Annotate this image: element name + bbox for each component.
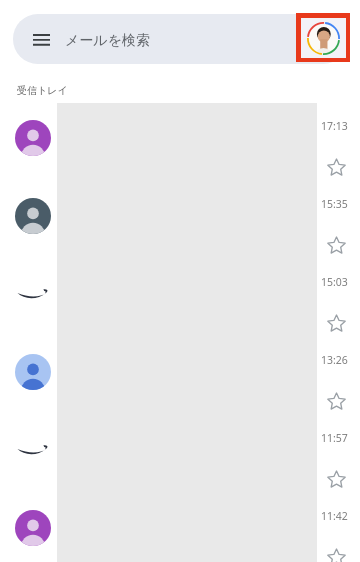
staticText: 13:26 [321,353,348,367]
staticText: 15:03 [321,275,348,289]
button[interactable]: 11:57 [0,415,360,493]
staticText: 17:13 [321,119,348,133]
button[interactable]: 11:42 [0,493,360,562]
button[interactable]: 15:03 [0,259,360,337]
staticText: 11:42 [321,509,348,523]
button[interactable]: Star conversation [327,548,346,562]
button[interactable]: Star conversation [327,392,346,410]
staticText: メールを検索 [65,32,150,50]
button[interactable]: Star conversation [327,314,346,332]
staticText: 受信トレイ [17,84,68,97]
staticText: 11:57 [321,431,348,445]
staticText: 15:35 [321,197,348,211]
button[interactable]: Open navigation drawer [13,14,348,64]
button[interactable]: 17:13 [0,103,360,181]
button[interactable]: 15:35 [0,181,360,259]
button[interactable]: Star conversation [327,470,346,488]
button[interactable]: Google Account profile [296,13,350,62]
button[interactable]: 13:26 [0,337,360,415]
button[interactable]: Star conversation [327,236,346,254]
button[interactable]: Open navigation drawer [28,27,54,53]
button[interactable]: Star conversation [327,158,346,176]
